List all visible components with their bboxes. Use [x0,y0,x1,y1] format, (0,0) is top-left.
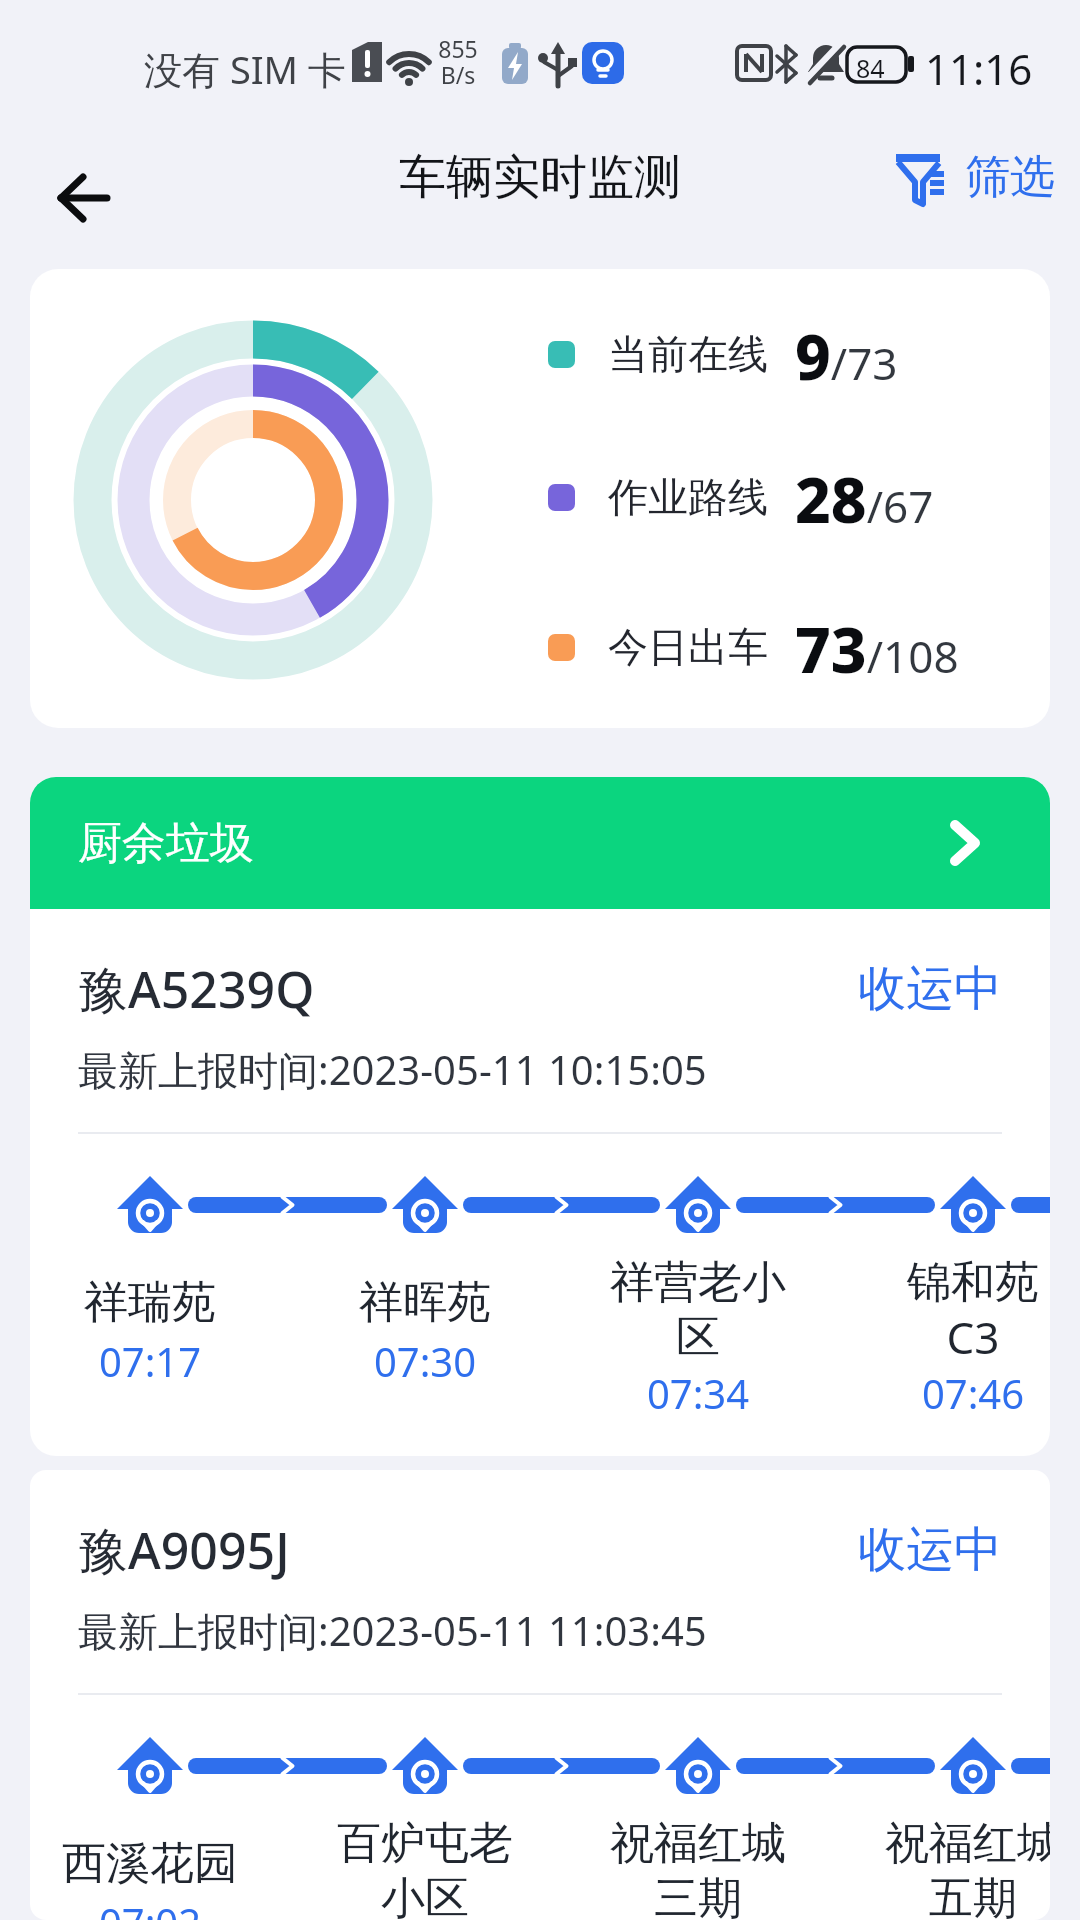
staticText: 07:34 [588,1366,808,1420]
staticText: 855 B/s [438,33,478,91]
staticText: 28/67 [795,457,934,537]
staticText: 祥晖苑 [315,1275,535,1330]
staticText: 车辆实时监测 [399,148,681,207]
staticText: 当前在线 [608,329,768,379]
staticText: 祥瑞苑 [40,1275,260,1330]
staticText: 百炉屯老 小区 [315,1816,535,1920]
button[interactable]: 厨余垃圾 [30,777,1050,909]
staticText: 今日出车 [608,622,768,672]
staticText: 豫A5239Q [78,955,315,1023]
button[interactable]: 收运中 [858,954,1002,1024]
staticText: 豫A9095J [78,1516,290,1584]
staticText: 9/73 [795,314,898,394]
staticText: 西溪花园 [40,1836,260,1891]
button[interactable]: 筛选 [892,149,1055,206]
staticText: 祝福红城 三期 [588,1816,808,1920]
staticText: 收运中 [858,1520,1002,1580]
staticText: 07:17 [40,1334,260,1388]
staticText: 11:16 [925,40,1033,97]
staticText: 最新上报时间:2023-05-11 10:15:05 [78,1042,707,1097]
staticText: 收运中 [858,959,1002,1019]
button[interactable]: 收运中 [858,1515,1002,1585]
staticText: 厨余垃圾 [78,816,254,871]
staticText: 锦和苑 C3 [863,1255,1050,1367]
staticText: 07:46 [863,1366,1050,1420]
staticText: 07:30 [315,1334,535,1388]
staticText: 84 [856,51,885,85]
staticText: 筛选 [965,149,1055,206]
staticText: 最新上报时间:2023-05-11 11:03:45 [78,1603,707,1658]
staticText: 没有 SIM 卡 [144,43,346,95]
staticText: 73/108 [795,607,959,687]
staticText: 祝福红城 五期 [863,1816,1050,1920]
staticText: 作业路线 [608,472,768,522]
button[interactable] [40,153,130,243]
staticText: 07:02 [40,1895,260,1920]
staticText: 祥营老小 区 [588,1255,808,1365]
